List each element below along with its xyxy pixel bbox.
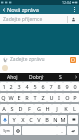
button[interactable]: Zadejte příjemce (0, 14, 79, 24)
staticText: M (60, 116, 66, 123)
button[interactable]: W (7, 93, 15, 102)
button[interactable]: 1 (0, 82, 7, 91)
button[interactable]: Z (39, 93, 47, 102)
button[interactable]: H (43, 104, 52, 113)
staticText: 3 (17, 83, 21, 90)
button[interactable]: E (15, 93, 23, 102)
button[interactable]: Keyboard settings (14, 126, 21, 135)
button[interactable]: 6 (39, 82, 47, 91)
staticText: R (25, 94, 29, 101)
staticText: A (2, 105, 6, 112)
staticText: 8 (57, 83, 61, 90)
button[interactable]: Y (9, 115, 18, 124)
button[interactable]: R (23, 93, 31, 102)
staticText: E (17, 94, 21, 101)
button[interactable]: T (31, 93, 39, 102)
staticText: 7 (49, 83, 53, 90)
button[interactable]: More options (70, 5, 79, 14)
staticText: F (28, 105, 31, 112)
button[interactable]: C (27, 115, 35, 124)
staticText: J (56, 105, 58, 112)
button[interactable]: J (52, 104, 61, 113)
button[interactable]: S (48, 73, 72, 81)
button[interactable]: V (35, 115, 43, 124)
button[interactable]: O (63, 93, 71, 102)
button[interactable]: P (71, 93, 79, 102)
staticText: V (37, 116, 41, 123)
staticText: N (53, 116, 58, 123)
button[interactable]: Q (0, 93, 7, 102)
staticText: 5 (33, 83, 37, 90)
button[interactable]: F (25, 104, 34, 113)
staticText: D (18, 105, 23, 112)
button[interactable]: Sym (0, 126, 13, 135)
button[interactable]: N (51, 115, 59, 124)
button[interactable]: More suggestions (72, 73, 79, 81)
staticText: 6 (41, 83, 45, 90)
staticText: Dobrý (29, 74, 44, 81)
staticText: C (29, 116, 33, 123)
button[interactable]: G (34, 104, 43, 113)
button[interactable]: X (18, 115, 27, 124)
button[interactable]: S (8, 104, 16, 113)
button[interactable]: M (59, 115, 67, 124)
button[interactable]: Backspace (68, 115, 78, 124)
button[interactable]: L (70, 104, 79, 113)
staticText: Zadejte zprávu (10, 56, 45, 63)
staticText: H (45, 105, 50, 112)
button[interactable]: Attach (0, 55, 10, 64)
staticText: P (73, 94, 77, 101)
button[interactable]: Shift (1, 115, 8, 124)
button[interactable]: D (16, 104, 25, 113)
button[interactable]: 4 (23, 82, 31, 91)
staticText: G (37, 105, 41, 112)
staticText: 0 (73, 83, 77, 90)
button[interactable]: 2 (7, 82, 15, 91)
button[interactable]: Enter (67, 126, 78, 135)
staticText: . (61, 127, 63, 134)
button[interactable]: Back (0, 5, 7, 14)
button[interactable]: I (55, 93, 63, 102)
button[interactable]: 9 (63, 82, 71, 91)
staticText: Q (1, 94, 6, 101)
staticText: W (8, 94, 14, 101)
button[interactable]: U (47, 93, 55, 102)
staticText: O (65, 94, 70, 101)
button[interactable]: 8 (55, 82, 63, 91)
staticText: L (73, 105, 76, 112)
staticText: Zadejte příjemce (3, 16, 43, 23)
staticText: I (58, 94, 60, 101)
staticText: K (64, 105, 68, 112)
staticText: T (33, 94, 37, 101)
staticText: Nová zpráva (7, 6, 39, 13)
button[interactable]: 7 (47, 82, 55, 91)
staticText: 1 (2, 83, 6, 90)
staticText: 4 (25, 83, 29, 90)
button[interactable]: 5 (31, 82, 39, 91)
button[interactable]: 3 (15, 82, 23, 91)
staticText: 9 (65, 83, 69, 90)
button[interactable]: Dobrý (24, 73, 48, 81)
button[interactable]: 0 (71, 82, 79, 91)
button[interactable]: K (61, 104, 70, 113)
staticText: S (59, 74, 62, 81)
staticText: Ahoj (7, 74, 18, 81)
staticText: U (49, 94, 54, 101)
staticText: 12:04 (62, 0, 71, 5)
staticText: Z (41, 94, 45, 101)
staticText: Y (12, 116, 16, 123)
button[interactable]: B (43, 115, 51, 124)
staticText: S (10, 105, 14, 112)
button[interactable]: Send (70, 57, 76, 63)
staticText: Sym (3, 129, 10, 133)
button[interactable]: Ahoj (0, 73, 24, 81)
staticText: X (21, 116, 25, 123)
staticText: 2 (9, 83, 13, 90)
button[interactable]: . (57, 126, 66, 135)
staticText: B (45, 116, 49, 123)
button[interactable]: Add recipient from contacts (68, 14, 79, 24)
button[interactable]: A (0, 104, 8, 113)
